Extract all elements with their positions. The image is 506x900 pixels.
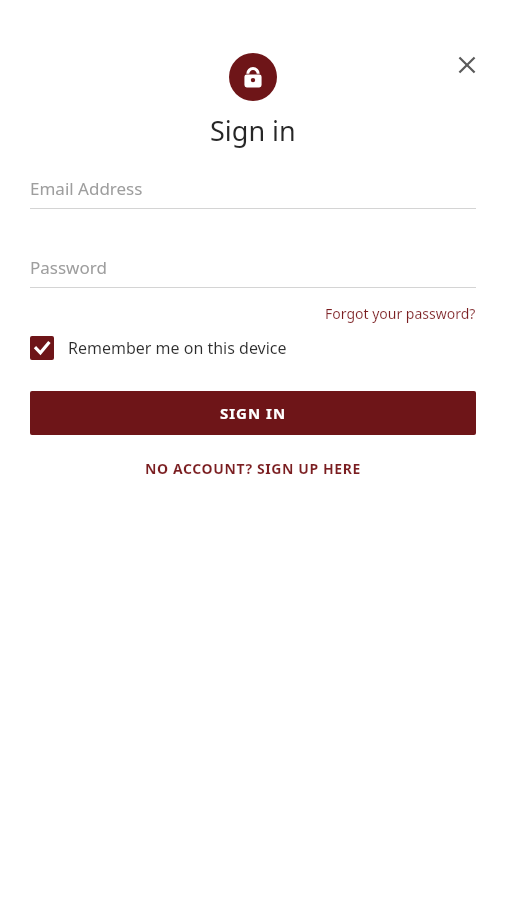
button[interactable]: Forgot your password? xyxy=(325,302,476,325)
button[interactable]: Password xyxy=(30,247,476,287)
button[interactable]: Close xyxy=(443,41,491,89)
staticText: Email Address xyxy=(30,177,143,200)
staticText: Remember me on this device xyxy=(68,337,287,359)
button[interactable]: Email Address xyxy=(30,168,476,208)
staticText: Forgot your password? xyxy=(325,304,476,323)
staticText: SIGN IN xyxy=(220,403,287,423)
staticText: Password xyxy=(30,256,107,279)
staticText: NO ACCOUNT? SIGN UP HERE xyxy=(145,459,361,478)
button[interactable]: Remember me on this device xyxy=(30,334,287,362)
staticText: Sign in xyxy=(210,112,296,149)
button[interactable]: SIGN IN xyxy=(30,391,476,435)
button[interactable]: NO ACCOUNT? SIGN UP HERE xyxy=(30,455,476,482)
